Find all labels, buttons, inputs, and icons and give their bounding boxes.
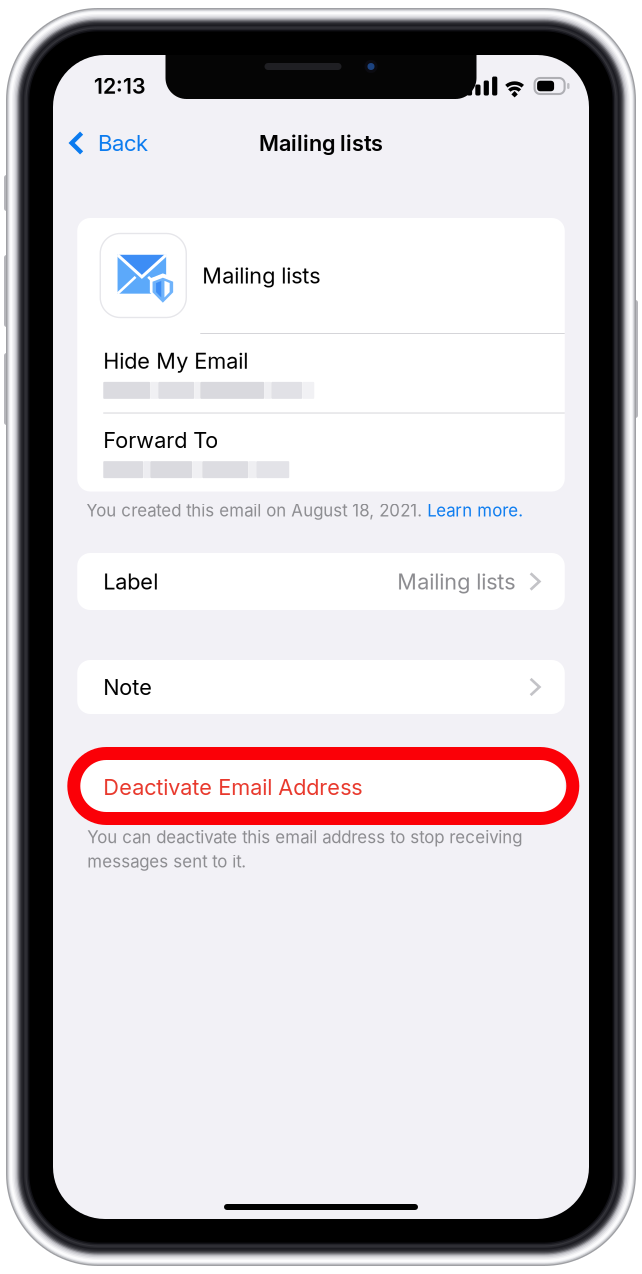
- staticText: Forward To: [103, 427, 218, 453]
- button[interactable]: Back: [53, 122, 162, 164]
- staticText: Label: [103, 568, 158, 595]
- staticText: messages sent to it.: [87, 851, 246, 872]
- staticText: 12:13: [94, 73, 146, 99]
- staticText: Mailing lists: [259, 130, 383, 156]
- staticText: Learn more.: [427, 500, 523, 521]
- staticText: You created this email on August 18, 202…: [86, 500, 422, 521]
- staticText: Note: [103, 674, 152, 700]
- staticText: Mailing lists: [202, 262, 320, 289]
- button[interactable]: Note: [77, 660, 565, 714]
- button[interactable]: Label: [77, 553, 565, 610]
- staticText: Deactivate Email Address: [103, 774, 362, 800]
- staticText: You can deactivate this email address to…: [87, 827, 522, 847]
- staticText: Mailing lists: [397, 568, 515, 595]
- staticText: Back: [98, 130, 148, 156]
- staticText: Hide My Email: [103, 348, 248, 374]
- button[interactable]: Deactivate Email Address: [77, 758, 565, 816]
- button[interactable]: Learn more.: [427, 500, 523, 521]
